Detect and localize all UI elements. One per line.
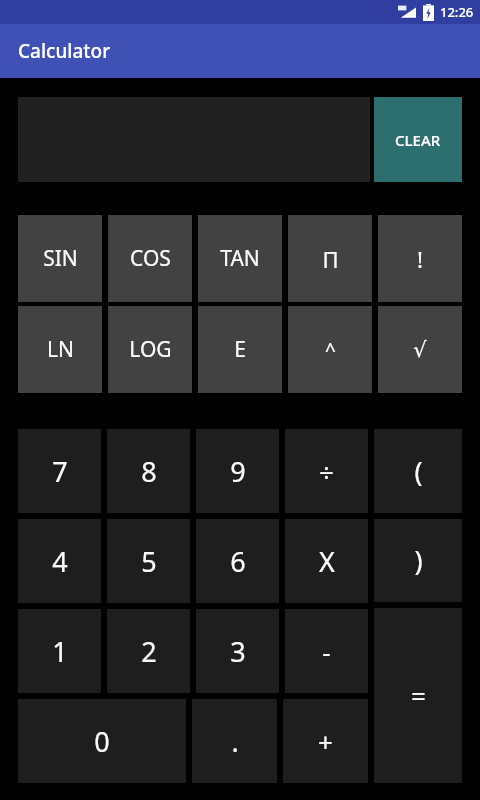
staticText: ) bbox=[414, 542, 423, 579]
button[interactable]: SIN bbox=[18, 215, 102, 302]
button[interactable]: . bbox=[192, 699, 277, 783]
staticText: ÷ bbox=[319, 454, 334, 489]
button[interactable]: 0 bbox=[18, 699, 186, 783]
staticText: ! bbox=[417, 244, 423, 274]
staticText: √ bbox=[413, 338, 427, 362]
button[interactable]: 7 bbox=[18, 429, 101, 513]
button[interactable]: 9 bbox=[196, 429, 279, 513]
staticText: - bbox=[322, 634, 331, 669]
button[interactable]: COS bbox=[108, 215, 192, 302]
staticText: 12:26 bbox=[440, 3, 474, 21]
button[interactable]: 1 bbox=[18, 609, 101, 693]
button[interactable]: ÷ bbox=[285, 429, 368, 513]
button[interactable]: CLEAR bbox=[374, 97, 462, 182]
button[interactable]: 4 bbox=[18, 519, 101, 603]
staticText: 9 bbox=[230, 453, 246, 490]
staticText: LOG bbox=[129, 335, 172, 364]
button[interactable]: 8 bbox=[107, 429, 190, 513]
staticText: X bbox=[319, 543, 335, 580]
button[interactable]: LOG bbox=[108, 306, 192, 393]
button[interactable]: - bbox=[285, 609, 368, 693]
button[interactable]: E bbox=[198, 306, 282, 393]
staticText: ^ bbox=[325, 337, 336, 363]
staticText: Π bbox=[322, 244, 339, 274]
staticText: LN bbox=[47, 335, 74, 364]
staticText: COS bbox=[130, 244, 171, 273]
button[interactable]: LN bbox=[18, 306, 102, 393]
staticText: 5 bbox=[141, 543, 157, 580]
staticText: = bbox=[411, 678, 426, 713]
button[interactable]: 3 bbox=[196, 609, 279, 693]
staticText: 2 bbox=[141, 633, 157, 670]
button[interactable]: ! bbox=[378, 215, 462, 302]
button[interactable]: 5 bbox=[107, 519, 190, 603]
button[interactable]: ( bbox=[374, 429, 462, 513]
staticText: 0 bbox=[94, 723, 110, 760]
staticText: . bbox=[231, 723, 239, 760]
button[interactable]: √ bbox=[378, 306, 462, 393]
staticText: SIN bbox=[43, 244, 78, 273]
staticText: Calculator bbox=[18, 38, 111, 64]
button[interactable]: 6 bbox=[196, 519, 279, 603]
staticText: 3 bbox=[230, 633, 246, 670]
button[interactable]: Π bbox=[288, 215, 372, 302]
staticText: TAN bbox=[220, 244, 260, 273]
staticText: CLEAR bbox=[395, 130, 441, 150]
button[interactable]: X bbox=[285, 519, 368, 603]
button[interactable]: + bbox=[283, 699, 368, 783]
button[interactable]: 2 bbox=[107, 609, 190, 693]
staticText: 7 bbox=[52, 453, 68, 490]
staticText: 8 bbox=[141, 453, 157, 490]
staticText: + bbox=[318, 724, 333, 759]
staticText: 6 bbox=[230, 543, 246, 580]
button[interactable]: ^ bbox=[288, 306, 372, 393]
staticText: 4 bbox=[52, 543, 68, 580]
staticText: E bbox=[234, 335, 246, 364]
button[interactable]: = bbox=[374, 608, 462, 783]
button[interactable]: ) bbox=[374, 519, 462, 602]
staticText: 1 bbox=[52, 633, 68, 670]
button[interactable]: TAN bbox=[198, 215, 282, 302]
staticText: ( bbox=[414, 453, 423, 490]
